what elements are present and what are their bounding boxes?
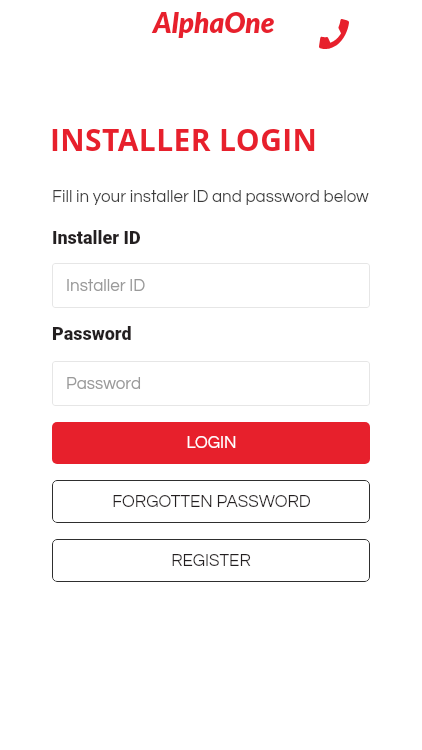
button[interactable]: Password (52, 361, 370, 406)
staticText: Password (66, 375, 142, 393)
staticText: Fill in your installer ID and password b… (52, 188, 369, 206)
staticText: Installer ID (52, 227, 141, 248)
button[interactable]: Installer ID (52, 263, 370, 308)
staticText: LOGIN (186, 434, 237, 452)
button[interactable]: Call us (319, 19, 349, 49)
staticText: INSTALLER LOGIN (50, 119, 318, 160)
staticText: Installer ID (66, 277, 146, 295)
staticText: AlphaOne (153, 5, 275, 39)
staticText: Password (52, 323, 132, 344)
button[interactable]: REGISTER (52, 539, 370, 582)
button[interactable]: FORGOTTEN PASSWORD (52, 480, 370, 523)
staticText: FORGOTTEN PASSWORD (112, 493, 311, 511)
button[interactable]: LOGIN (52, 422, 370, 464)
staticText: REGISTER (171, 552, 251, 570)
